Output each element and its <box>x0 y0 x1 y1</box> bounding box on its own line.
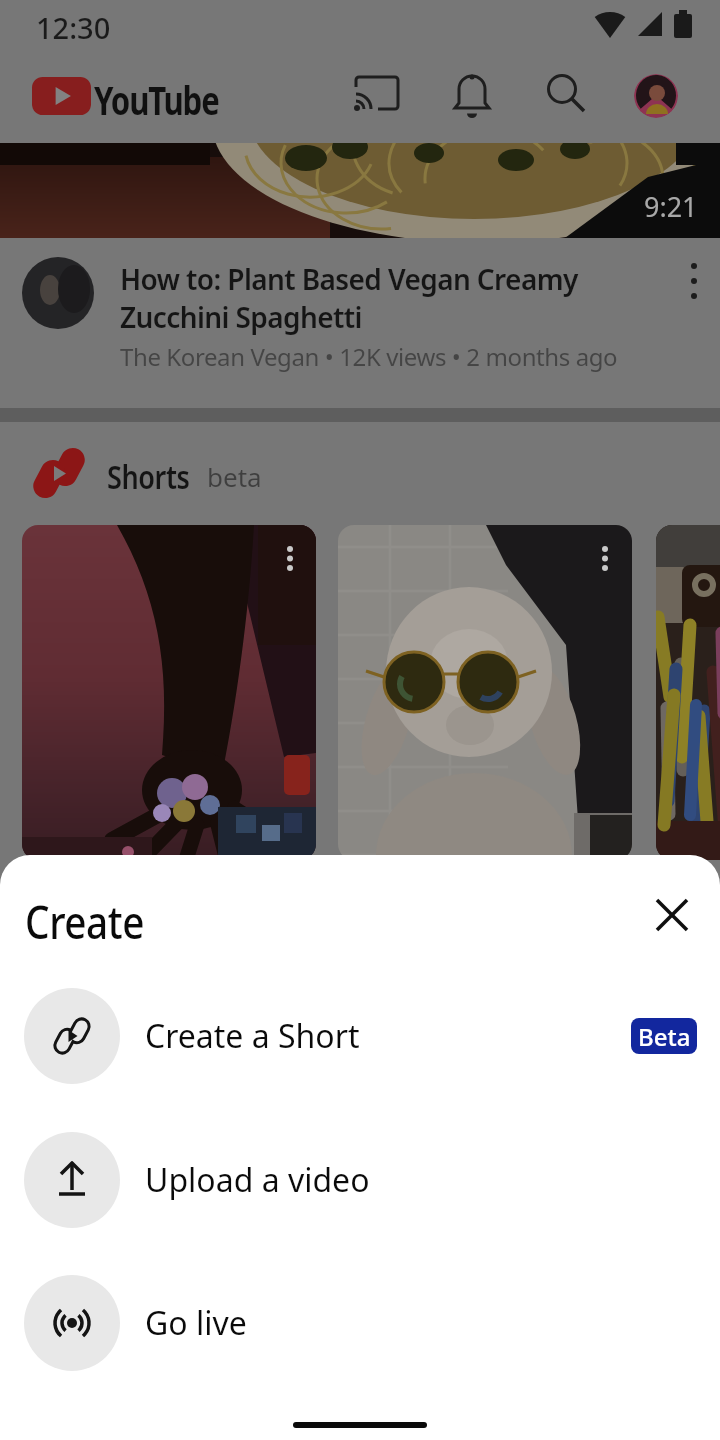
staticText: beta <box>207 459 262 494</box>
staticText: Shorts <box>107 454 190 499</box>
button[interactable]: Go live <box>0 1275 720 1371</box>
button[interactable] <box>680 262 708 318</box>
button[interactable] <box>453 73 491 119</box>
button[interactable] <box>656 525 720 860</box>
staticText: Create <box>25 891 144 952</box>
staticText: How to: Plant Based Vegan Creamy <box>120 260 578 298</box>
button[interactable] <box>634 74 678 118</box>
staticText: Zucchini Spaghetti <box>120 298 362 336</box>
staticText: The Korean Vegan • 12K views • 2 months … <box>120 340 618 373</box>
staticText: Beta <box>638 1020 691 1053</box>
staticText: 12:30 <box>36 8 111 47</box>
staticText: Upload a video <box>145 1158 370 1202</box>
staticText: Create a Short <box>145 1014 360 1058</box>
button[interactable] <box>354 75 400 113</box>
button[interactable] <box>22 525 316 860</box>
button[interactable]: Upload a video <box>0 1132 720 1228</box>
staticText: Go live <box>145 1301 247 1345</box>
staticText: 9:21 <box>644 188 698 225</box>
button[interactable]: How to: Plant Based Vegan Creamy <box>0 238 720 408</box>
button[interactable] <box>338 525 632 860</box>
staticText: YouTube <box>94 72 219 120</box>
button[interactable]: Create a Short <box>0 988 720 1084</box>
button[interactable] <box>546 73 588 117</box>
button[interactable] <box>633 876 711 954</box>
